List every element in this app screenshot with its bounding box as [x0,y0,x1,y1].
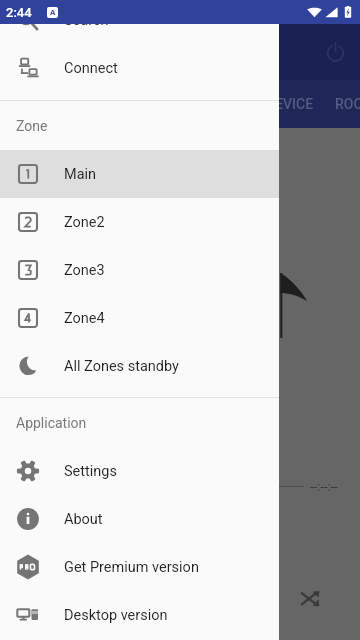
button[interactable]: Power [321,38,350,67]
button[interactable]: ROOM [335,80,360,128]
button[interactable]: Connect [0,44,279,92]
staticText: Zone [16,118,48,134]
staticText: Zone4 [64,310,105,327]
button[interactable]: Settings [0,447,279,495]
button[interactable]: Get Premium version [0,543,279,591]
button[interactable]: Zone4 [0,294,279,342]
button[interactable]: Shuffle [300,588,321,609]
staticText: 2:44 [6,5,32,20]
staticText: --:--:-- [310,479,338,494]
button[interactable]: Zone2 [0,198,279,246]
staticText: Zone3 [64,262,105,279]
staticText: Application [16,415,87,431]
staticText: Get Premium version [64,559,199,576]
staticText: Search [64,12,109,29]
staticText: Main [64,166,97,183]
button[interactable]: All Zones standby [0,342,279,390]
staticText: ROOM [335,96,360,112]
button[interactable]: Desktop version [0,591,279,639]
button[interactable]: DEVICE [245,80,335,128]
staticText: Desktop version [64,607,168,624]
staticText: A [50,8,56,17]
button[interactable]: About [0,495,279,543]
button[interactable]: Zone3 [0,246,279,294]
staticText: Settings [64,463,117,480]
staticText: Zone2 [64,214,105,231]
staticText: DEVICE [266,96,314,112]
button[interactable]: Main [0,150,279,198]
staticText: About [64,511,103,528]
staticText: All Zones standby [64,358,179,375]
staticText: Connect [64,60,118,77]
button[interactable]: Search [0,0,279,44]
